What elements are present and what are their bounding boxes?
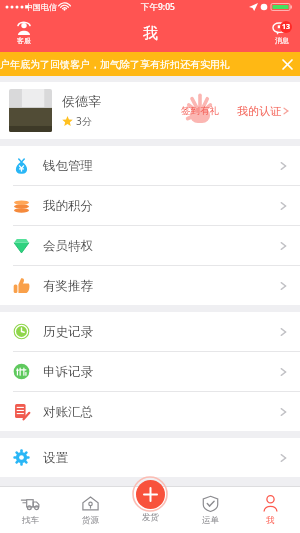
staticText: 对账汇总 — [43, 404, 93, 420]
staticText: 下午9:05 — [141, 1, 175, 13]
staticText: 我 — [266, 515, 275, 526]
button[interactable]: 签到有礼 — [177, 90, 223, 132]
button[interactable]: 会员特权 — [0, 226, 300, 265]
button[interactable]: 消息 — [273, 22, 290, 45]
button[interactable]: 我 — [240, 486, 300, 533]
staticText: 历史记录 — [43, 324, 93, 340]
button[interactable]: 历史记录 — [0, 312, 300, 351]
button[interactable]: 设置 — [0, 438, 300, 477]
staticText: 钱包管理 — [43, 158, 93, 174]
button[interactable]: 发货 — [133, 477, 167, 523]
button[interactable]: 钱包管理 — [0, 146, 300, 185]
staticText: 侯德宰 — [62, 93, 101, 109]
staticText: 消息 — [275, 36, 289, 45]
staticText: 中国电信 — [25, 2, 57, 12]
button[interactable]: 客服 — [12, 19, 36, 47]
button[interactable]: 货源 — [60, 486, 120, 533]
staticText: 申诉记录 — [43, 364, 93, 380]
button[interactable]: 运单 — [180, 486, 240, 533]
staticText: 设置 — [43, 450, 68, 466]
staticText: 运单 — [202, 515, 219, 526]
staticText: 我 — [143, 24, 158, 43]
staticText: 找车 — [22, 515, 39, 526]
staticText: 客服 — [17, 36, 31, 45]
button[interactable]: 我的认证 — [237, 98, 289, 124]
button[interactable]: 对账汇总 — [0, 392, 300, 431]
staticText: 我的积分 — [43, 198, 93, 214]
staticText: 发货 — [142, 512, 159, 523]
button[interactable]: 关闭 — [275, 56, 300, 73]
button[interactable]: 申诉记录 — [0, 352, 300, 391]
button[interactable]: 有奖推荐 — [0, 266, 300, 305]
staticText: 我的认证 — [237, 104, 281, 118]
button[interactable]: 侯德宰 — [0, 82, 300, 139]
staticText: 货源 — [82, 515, 99, 526]
button[interactable]: 我的积分 — [0, 186, 300, 225]
staticText: 签到有礼 — [181, 105, 219, 117]
staticText: 13 — [282, 22, 291, 32]
staticText: 3分 — [76, 114, 92, 128]
staticText: 户年底为了回馈客户，加气除了享有折扣还有实用礼 — [0, 58, 230, 71]
staticText: 有奖推荐 — [43, 278, 93, 294]
staticText: 会员特权 — [43, 238, 93, 254]
button[interactable]: 找车 — [0, 486, 60, 533]
